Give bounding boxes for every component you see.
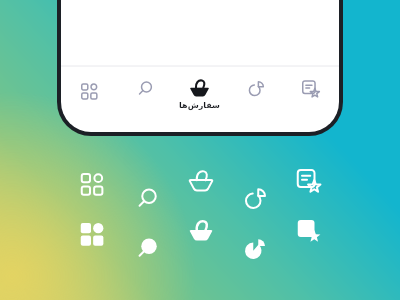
staticText: سفارش‌ها — [179, 101, 220, 110]
button[interactable]: Reviews — [283, 74, 338, 122]
button[interactable]: Dashboard — [62, 74, 117, 122]
button[interactable]: Reports — [240, 234, 270, 264]
button[interactable]: Reviews — [294, 166, 324, 196]
button[interactable]: Search — [117, 74, 172, 122]
button[interactable]: Dashboard — [78, 166, 108, 196]
button[interactable]: Search — [132, 234, 162, 264]
button[interactable]: Dashboard — [78, 216, 108, 246]
button[interactable]: Orders — [186, 166, 216, 196]
button[interactable]: Orders — [186, 216, 216, 246]
button[interactable]: Reports — [240, 184, 270, 214]
button[interactable]: Reports — [228, 74, 283, 122]
button[interactable]: Orders — [172, 74, 227, 122]
button[interactable]: Search — [132, 184, 162, 214]
button[interactable]: Reviews — [294, 216, 324, 246]
